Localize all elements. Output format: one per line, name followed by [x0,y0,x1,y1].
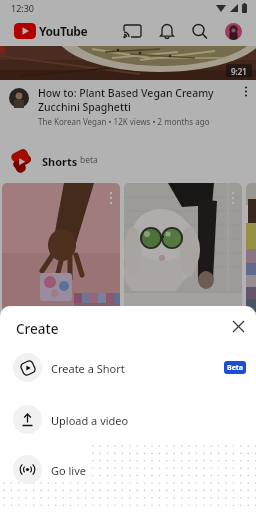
button[interactable] [124,183,242,312]
button[interactable] [242,86,250,98]
button[interactable] [246,183,256,312]
staticText: Beta [227,363,244,373]
staticText: 9:21 [231,66,247,77]
button[interactable] [108,191,114,205]
staticText: How to: Plant Based Vegan Creamy Zucchin… [38,86,214,114]
staticText: beta [80,154,98,166]
staticText: 12:30 [11,2,35,14]
button[interactable]: Create a Short [0,353,256,395]
button[interactable] [225,23,242,40]
button[interactable] [158,22,176,40]
staticText: Create a Short [51,361,125,376]
button[interactable]: Upload a video [0,405,256,447]
staticText: YouTube [39,23,88,39]
button[interactable] [2,183,120,312]
staticText: Shorts [42,154,78,169]
button[interactable] [228,316,248,336]
button[interactable] [14,23,94,39]
staticText: Go live [51,463,86,478]
staticText: Create [16,320,59,338]
button[interactable] [230,191,236,205]
staticText: Upload a video [51,413,129,428]
button[interactable] [0,46,256,80]
button[interactable]: Go live [0,455,256,497]
button[interactable]: How to: Plant Based Vegan Creamy Zucchin… [0,80,256,136]
button[interactable] [123,22,143,40]
staticText: The Korean Vegan • 12K views • 2 months … [38,116,210,127]
button[interactable] [191,23,209,40]
